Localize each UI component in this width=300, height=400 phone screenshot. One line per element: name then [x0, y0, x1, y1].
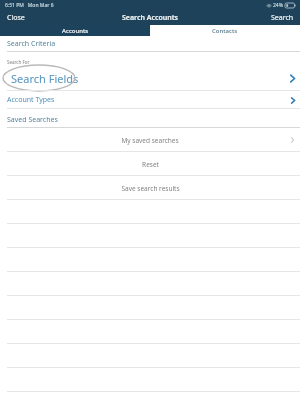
button[interactable]	[0, 344, 300, 368]
staticText: Accounts	[62, 27, 89, 35]
other: Open	[291, 97, 295, 104]
button[interactable]	[0, 224, 300, 248]
other: Open	[290, 74, 295, 83]
button[interactable]: My saved searches	[0, 128, 300, 152]
button[interactable]: Search Fields	[0, 65, 300, 91]
staticText: Search Accounts	[122, 13, 179, 23]
button[interactable]: Save search results	[0, 176, 300, 200]
button[interactable]: Account Types	[0, 91, 300, 109]
button[interactable]: Search	[265, 11, 300, 25]
staticText: Saved Searches	[7, 115, 58, 125]
button[interactable]	[0, 200, 300, 224]
staticText: My saved searches	[121, 136, 179, 145]
button[interactable]: Close	[0, 11, 32, 25]
button[interactable]: Contacts	[150, 25, 300, 36]
staticText: 6:51 PM Mon Mar 6	[5, 2, 54, 9]
button[interactable]	[0, 248, 300, 272]
staticText: Search	[271, 13, 294, 23]
button[interactable]	[0, 368, 300, 392]
staticText: Search Fields	[11, 71, 79, 86]
staticText: 24%	[273, 2, 283, 9]
staticText: Search For	[7, 59, 30, 65]
button[interactable]	[0, 320, 300, 344]
staticText: Close	[7, 13, 25, 23]
button[interactable]	[0, 272, 300, 296]
staticText: Search Criteria	[7, 39, 56, 49]
staticText: Account Types	[7, 95, 55, 105]
staticText: Save search results	[121, 184, 180, 193]
staticText: Reset	[142, 160, 159, 169]
staticText: Contacts	[212, 27, 238, 35]
button[interactable]	[0, 296, 300, 320]
button[interactable]: Reset	[0, 152, 300, 176]
other: Open	[291, 137, 294, 143]
button[interactable]: Accounts	[0, 25, 150, 36]
